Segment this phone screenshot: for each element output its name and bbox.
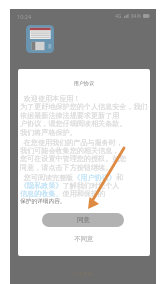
staticText: 依据最新法律法规要求更新了用: [20, 111, 120, 120]
staticText: 4G: [115, 13, 122, 20]
staticText: 户协议，请您仔细阅读相关条款。: [20, 119, 127, 128]
staticText: 为了更好地保护您的个人信息安全，我们: [20, 102, 148, 111]
other: App icon: [26, 25, 54, 53]
staticText: 10:24: [17, 13, 32, 20]
staticText: 不同意: [74, 235, 94, 243]
staticText: 用户协议: [74, 80, 94, 86]
staticText: 同意，请点击下方按钮继续。: [20, 163, 113, 172]
staticText: 我们可能会收集您的相关信息，: [20, 146, 120, 155]
button[interactable]: 同意: [42, 213, 124, 227]
button[interactable]: 不同意: [67, 234, 100, 244]
staticText: 我们将严格保护。: [20, 128, 77, 137]
staticText: 信息的收集、使用和保护的: [20, 189, 106, 198]
staticText: 84%: [131, 13, 141, 20]
staticText: 同意: [77, 216, 90, 224]
staticText: 在您使用我们的产品与服务时，: [20, 137, 124, 147]
staticText: 您可阅读完整版《用户协议》和: [20, 172, 124, 182]
staticText: 欢迎使用本应用！: [20, 93, 81, 103]
staticText: 《隐私政策》了解我们对您个人: [20, 181, 120, 190]
staticText: 保护的详细内容。: [20, 198, 66, 205]
staticText: 您可在设置中管理您的授权。如您: [20, 154, 127, 163]
